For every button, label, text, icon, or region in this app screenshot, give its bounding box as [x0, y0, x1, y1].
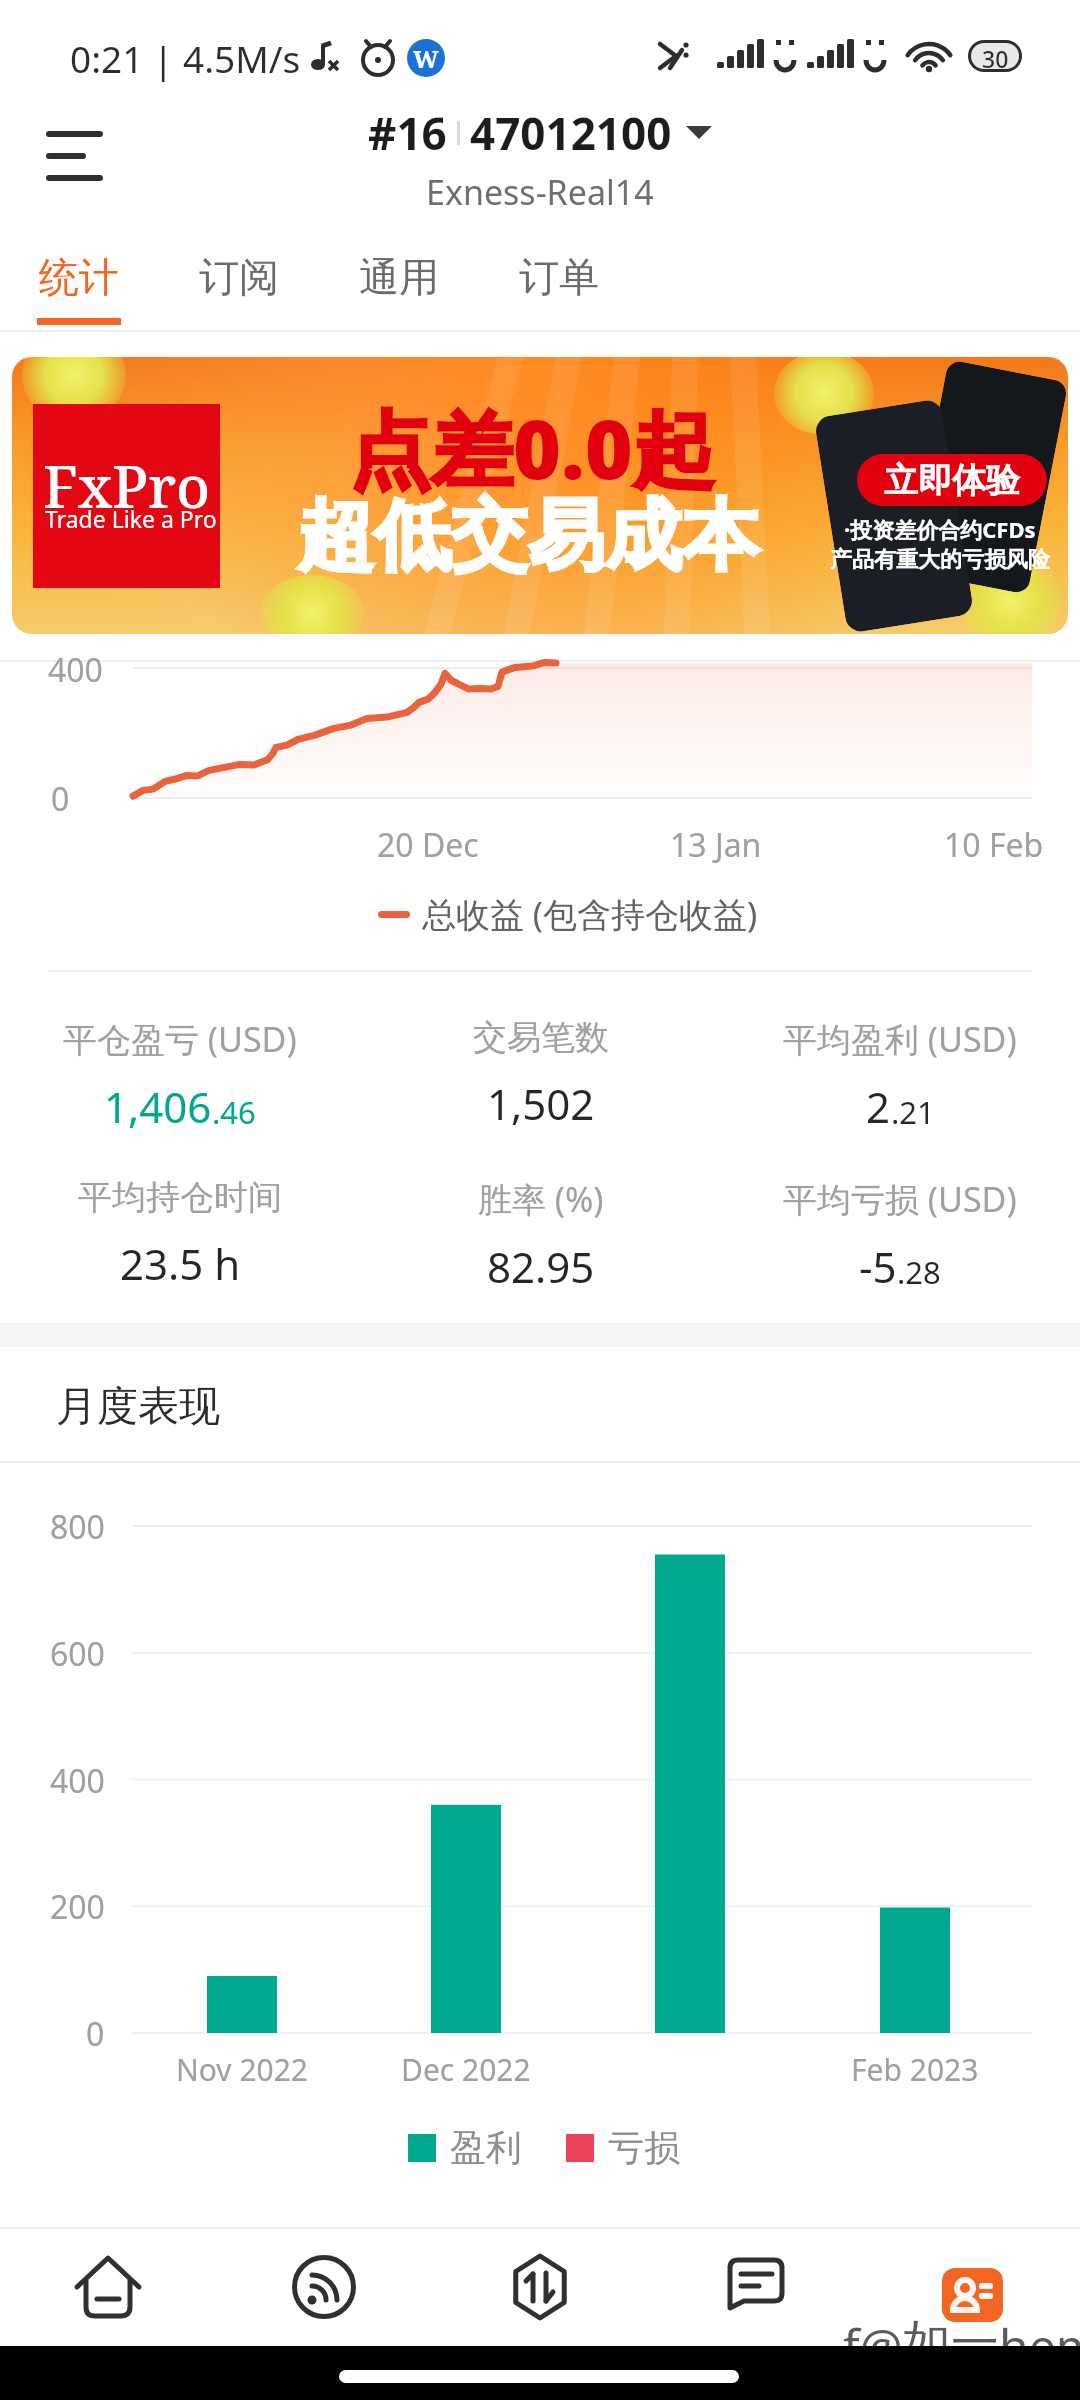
- staticText: 400: [48, 648, 103, 692]
- button[interactable]: 通用: [319, 232, 479, 332]
- staticText: 600: [50, 1632, 105, 1676]
- button[interactable]: 订阅: [159, 232, 319, 332]
- staticText: 20 Dec: [377, 823, 479, 867]
- staticText: Nov 2022: [176, 2049, 309, 2090]
- staticText: 总收益 (包含持仓收益): [422, 891, 758, 937]
- staticText: 82.95: [487, 1238, 595, 1295]
- button[interactable]: Profile: [864, 2227, 1080, 2346]
- staticText: Exness-Real14: [426, 169, 654, 215]
- staticText: 订阅: [199, 252, 279, 302]
- staticText: .46: [212, 1091, 256, 1133]
- staticText: 47012100: [470, 103, 672, 163]
- staticText: 平均亏损 (USD): [783, 1176, 1017, 1222]
- button[interactable]: Menu: [27, 108, 123, 204]
- staticText: 月度表现: [56, 1381, 220, 1433]
- staticText: 30: [982, 43, 1009, 69]
- button[interactable]: Home: [0, 2227, 216, 2346]
- button[interactable]: Quotes: [216, 2227, 432, 2346]
- staticText: 10 Feb: [944, 823, 1044, 867]
- button[interactable]: 立即体验: [857, 454, 1047, 506]
- staticText: 平均盈利 (USD): [783, 1016, 1017, 1062]
- button[interactable]: #16: [368, 103, 712, 215]
- staticText: 1,406: [104, 1078, 212, 1135]
- staticText: Feb 2023: [851, 2049, 979, 2090]
- staticText: 0: [86, 2012, 105, 2056]
- staticText: 通用: [359, 252, 439, 302]
- staticText: .21: [891, 1091, 935, 1133]
- staticText: ·投资差价合约CFDs: [844, 514, 1036, 544]
- staticText: .28: [897, 1251, 941, 1293]
- staticText: Trade Like a Pro: [45, 503, 217, 534]
- staticText: 400: [50, 1759, 105, 1803]
- staticText: 胜率 (%): [478, 1176, 604, 1222]
- staticText: 订单: [519, 252, 599, 302]
- button[interactable]: Trade: [432, 2227, 648, 2346]
- staticText: f@: [843, 2313, 903, 2378]
- staticText: 盈利: [450, 2125, 522, 2170]
- staticText: 1,502: [487, 1075, 595, 1132]
- staticText: 点差0.0起: [349, 391, 715, 503]
- button[interactable]: 统计: [0, 232, 159, 332]
- staticText: 亏损: [608, 2125, 680, 2170]
- staticText: 交易笔数: [473, 1016, 609, 1059]
- staticText: 平均持仓时间: [78, 1176, 282, 1219]
- staticText: -5: [859, 1238, 897, 1295]
- staticText: #16: [368, 103, 447, 163]
- staticText: FxPro: [43, 446, 211, 525]
- staticText: 0: [51, 777, 70, 821]
- staticText: 平仓盈亏 (USD): [63, 1016, 297, 1062]
- staticText: hem: [999, 2313, 1080, 2378]
- button[interactable]: 订单: [479, 232, 639, 332]
- staticText: 产品有重大的亏损风险: [830, 546, 1050, 574]
- staticText: 超低交易成本: [297, 488, 759, 585]
- staticText: 0:21 | 4.5M/s: [70, 33, 301, 83]
- staticText: W: [413, 42, 439, 75]
- staticText: 立即体验: [884, 459, 1020, 502]
- staticText: Dec 2022: [401, 2049, 531, 2090]
- staticText: 统计: [39, 252, 119, 302]
- staticText: 200: [50, 1885, 105, 1929]
- staticText: 13 Jan: [670, 823, 762, 867]
- staticText: 2: [866, 1078, 891, 1135]
- button[interactable]: FxPro: [12, 357, 1068, 634]
- button[interactable]: Chat: [648, 2227, 864, 2346]
- staticText: 23.5 h: [120, 1235, 241, 1292]
- staticText: 如一: [903, 2313, 999, 2373]
- staticText: 800: [50, 1505, 105, 1549]
